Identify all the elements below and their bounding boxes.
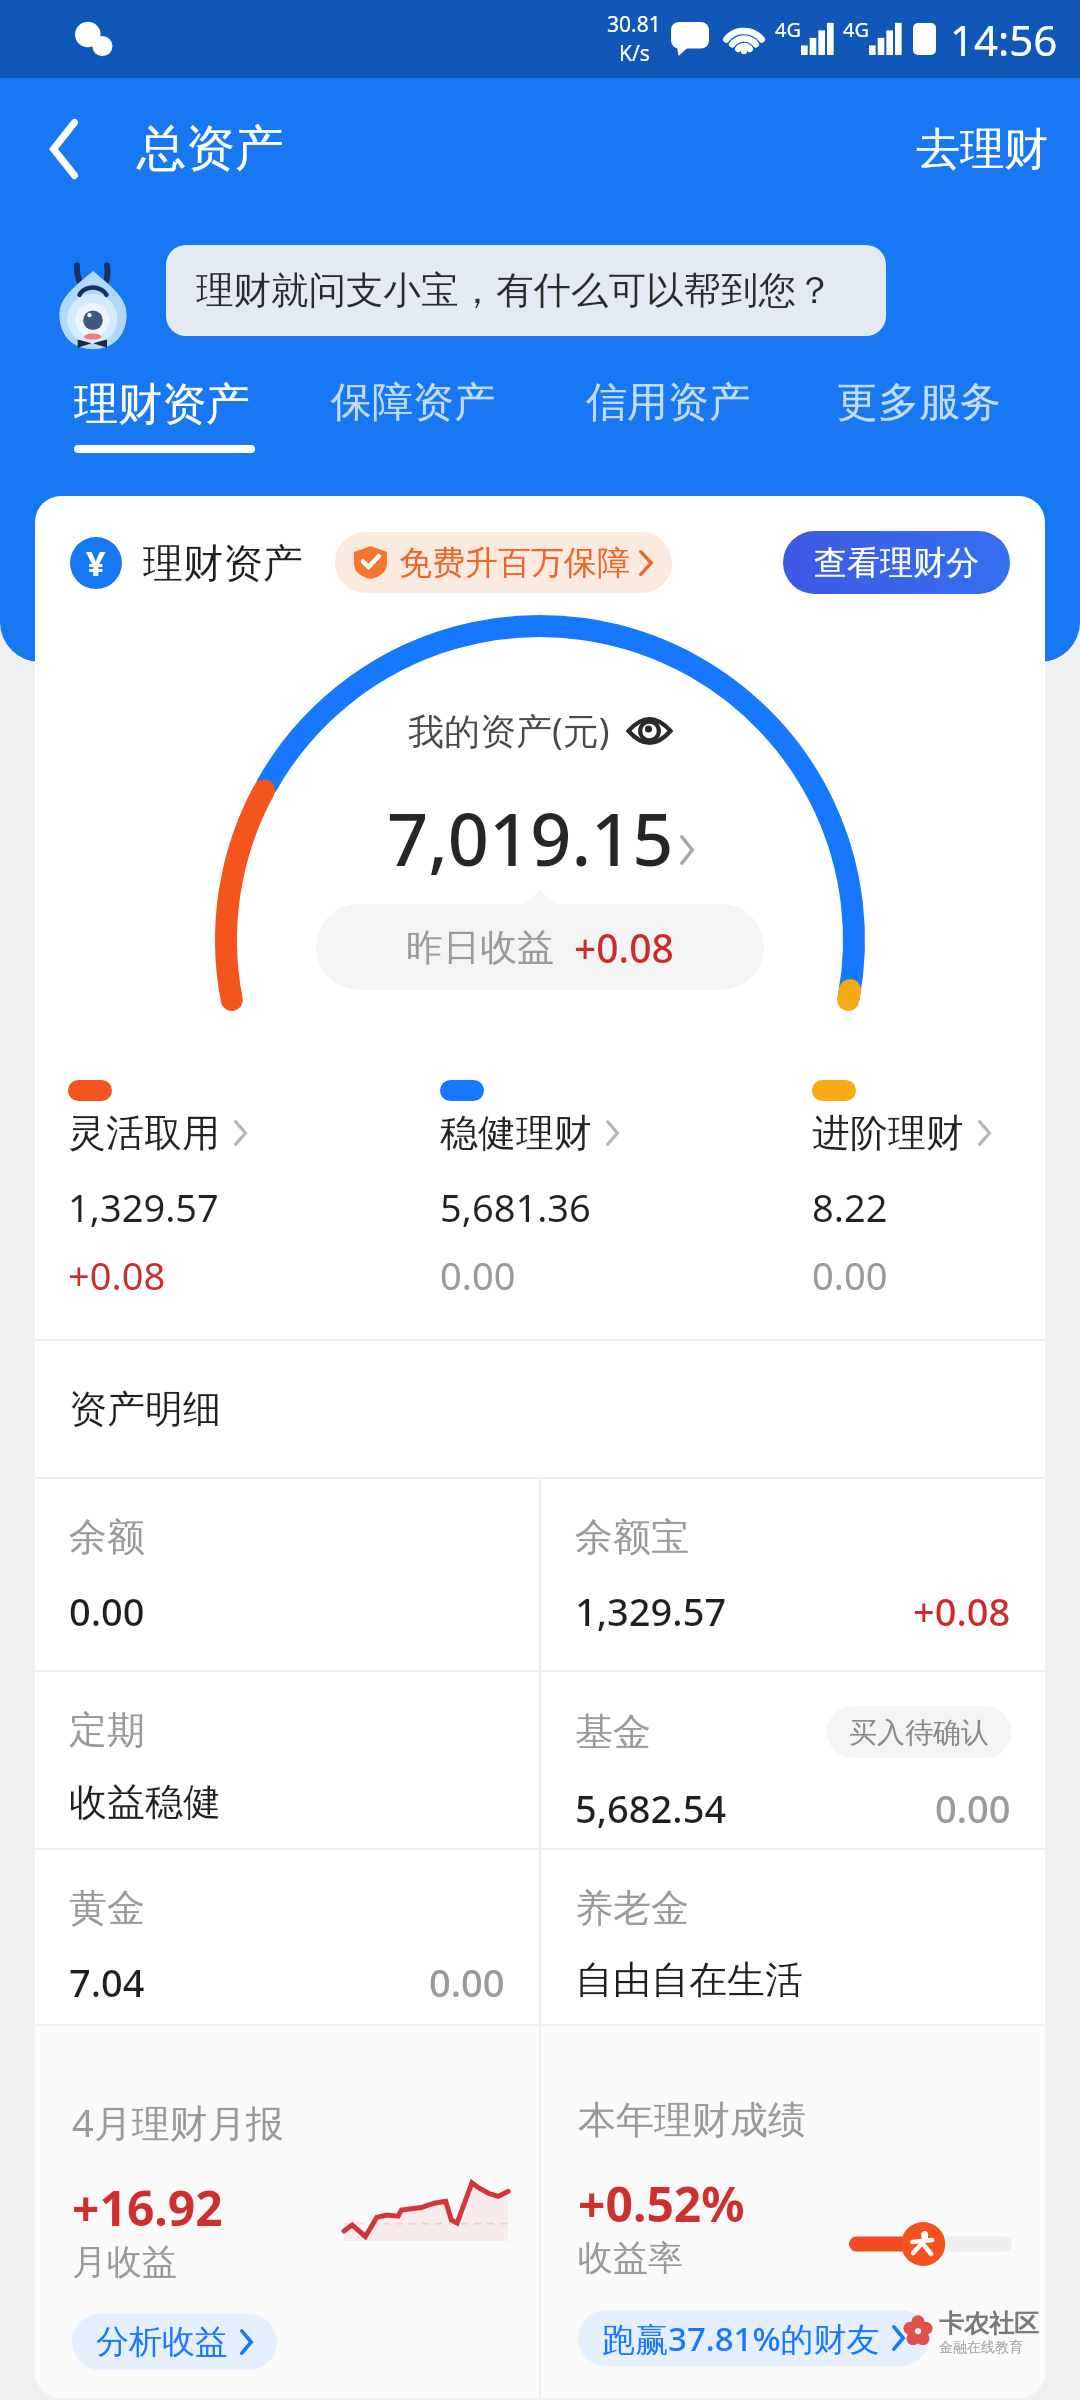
staticText: 4G [775, 16, 801, 43]
button[interactable]: 4月理财月报 [35, 2026, 539, 2398]
staticText: 分析收益 [96, 2321, 228, 2363]
button[interactable]: 理财资产 [74, 350, 255, 453]
button[interactable]: 保障资产 [331, 350, 495, 450]
staticText: 稳健理财 [440, 1109, 592, 1157]
staticText: 14:56 [950, 11, 1058, 68]
staticText: 养老金 [575, 1884, 689, 1932]
staticText: 理财资产 [143, 538, 303, 588]
button[interactable]: Back [0, 93, 128, 205]
staticText: 查看理财分 [814, 542, 979, 584]
staticText: 4月理财月报 [72, 2096, 284, 2148]
staticText: 理财资产 [74, 377, 250, 432]
staticText: 更多服务 [837, 377, 1001, 429]
staticText: +0.08 [574, 921, 674, 974]
staticText: 昨日收益 [406, 924, 554, 971]
button[interactable]: 分析收益 [72, 2314, 277, 2370]
staticText: 进阶理财 [812, 1109, 964, 1157]
staticText: 余额 [69, 1513, 145, 1561]
button[interactable]: 理财就问支小宝，有什么可以帮到您？ [166, 245, 886, 336]
staticText: 1,329.57 [575, 1585, 727, 1637]
staticText: 本年理财成绩 [578, 2096, 806, 2144]
staticText: +16.92 [72, 2175, 223, 2240]
button[interactable]: 稳健理财 [440, 1080, 812, 1301]
button[interactable]: 免费升百万保障 [335, 532, 672, 593]
button[interactable]: 去理财 [884, 106, 1080, 193]
staticText: 0.00 [69, 1585, 145, 1637]
button[interactable]: 定期 [35, 1672, 539, 1848]
staticText: 收益率 [578, 2236, 683, 2280]
staticText: 定期 [69, 1706, 145, 1754]
button[interactable]: 昨日收益 [316, 904, 764, 990]
staticText: ¥ [86, 540, 106, 586]
staticText: 理财就问支小宝，有什么可以帮到您？ [196, 267, 834, 314]
staticText: 0.00 [935, 1782, 1011, 1834]
staticText: 1,329.57 [68, 1181, 219, 1233]
staticText: K/s [619, 39, 650, 68]
staticText: 我的资产(元) [408, 706, 610, 755]
staticText: 7,019.15 [387, 789, 674, 887]
staticText: 卡农社区 [939, 2308, 1039, 2339]
staticText: +0.52% [578, 2171, 745, 2236]
staticText: 7.04 [69, 1956, 145, 2008]
staticText: 黄金 [69, 1884, 145, 1932]
staticText: 跑赢37.81%的财友 [602, 2316, 880, 2361]
staticText: 灵活取用 [68, 1109, 220, 1157]
button[interactable]: 余额宝 [541, 1479, 1045, 1670]
button[interactable]: Toggle amount visibility [626, 713, 673, 749]
staticText: 去理财 [916, 122, 1048, 177]
staticText: 收益稳健 [69, 1778, 221, 1826]
staticText: 5,682.54 [575, 1782, 727, 1834]
staticText: 总资产 [137, 118, 284, 180]
staticText: 基金 [575, 1708, 651, 1756]
staticText: 信用资产 [586, 377, 750, 429]
button[interactable]: 黄金 [35, 1850, 539, 2024]
button[interactable]: 进阶理财 [812, 1080, 1038, 1301]
staticText: 余额宝 [575, 1513, 689, 1561]
button[interactable]: 更多服务 [837, 350, 1001, 450]
staticText: 30.81 [607, 10, 661, 39]
button[interactable]: 灵活取用 [68, 1080, 440, 1301]
staticText: 4G [843, 16, 869, 43]
staticText: 金融在线教育 [939, 2339, 1023, 2357]
staticText: 0.00 [429, 1956, 505, 2008]
staticText: 8.22 [812, 1181, 888, 1233]
button[interactable]: 基金 [541, 1672, 1045, 1848]
button[interactable]: 余额 [35, 1479, 539, 1670]
staticText: 5,681.36 [440, 1181, 591, 1233]
button[interactable]: 养老金 [541, 1850, 1045, 2024]
staticText: 月收益 [72, 2240, 177, 2284]
button[interactable]: 查看理财分 [783, 531, 1010, 594]
staticText: 0.00 [440, 1249, 516, 1301]
staticText: +0.08 [68, 1249, 166, 1301]
button[interactable]: 信用资产 [586, 350, 750, 450]
button[interactable]: 跑赢37.81%的财友 [578, 2310, 929, 2366]
button[interactable]: 本年理财成绩 [541, 2026, 1045, 2398]
staticText: 自由自在生活 [575, 1956, 803, 2004]
staticText: +0.08 [913, 1585, 1011, 1637]
staticText: 免费升百万保障 [399, 542, 630, 584]
staticText: 0.00 [812, 1249, 888, 1301]
staticText: 买入待确认 [849, 1715, 989, 1750]
staticText: 资产明细 [69, 1385, 221, 1433]
staticText: 保障资产 [331, 377, 495, 429]
